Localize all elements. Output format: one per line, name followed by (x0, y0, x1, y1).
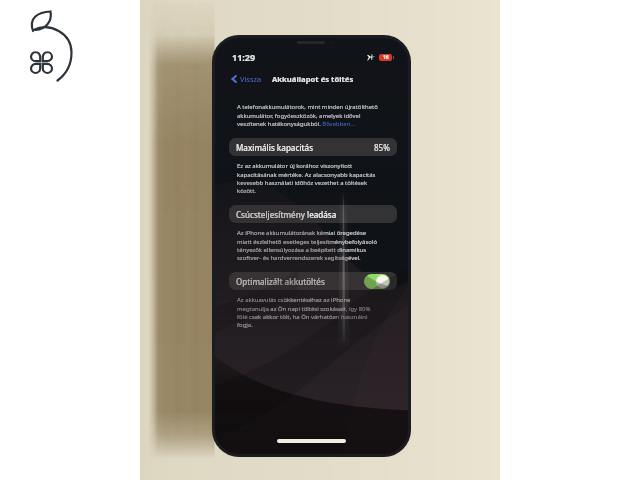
staticText: 11:29 (232, 51, 256, 63)
button[interactable]: Csúcsteljesítmény leadása (229, 205, 397, 223)
staticText: Az akkuavulás csökkentéséhez az iPhone m… (237, 296, 381, 328)
staticText: 85% (374, 142, 390, 153)
staticText: Csúcsteljesítmény leadása (236, 209, 337, 220)
staticText: 16 (383, 54, 389, 61)
staticText: Az iPhone akkumulátorának kémiai öregedé… (237, 229, 381, 261)
staticText: Maximális kapacitás (236, 142, 314, 153)
staticText: A telefonakkumulátorok, mint minden újra… (237, 103, 381, 127)
staticText: Ez az akkumulátor új korához viszonyítot… (237, 162, 381, 194)
button[interactable]: Optimalizált akkutöltés (229, 272, 397, 290)
staticText: Optimalizált akkutöltés (236, 276, 325, 287)
button[interactable]: Vissza (215, 72, 266, 86)
staticText: Akkuállapot és töltés (272, 74, 354, 84)
staticText: Vissza (240, 74, 262, 84)
button[interactable]: Maximális kapacitás (229, 138, 397, 156)
button[interactable]: Optimalizált akkutöltés kapcsoló (364, 274, 390, 289)
